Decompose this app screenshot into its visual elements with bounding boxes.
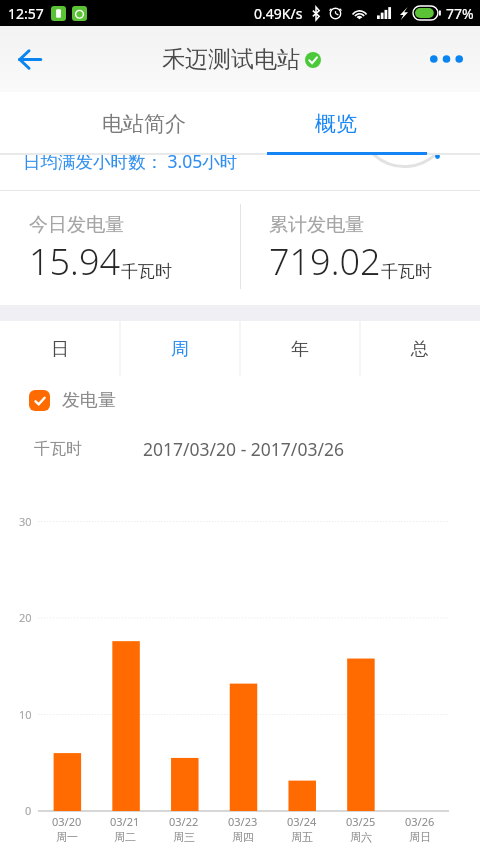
staticText: 2017/03/20 - 2017/03/26 xyxy=(143,437,344,461)
staticText: 周日 xyxy=(409,830,431,844)
staticText: 719.02 xyxy=(269,237,381,286)
staticText: 15.94 xyxy=(29,237,121,286)
staticText: 77% xyxy=(446,4,474,23)
staticText: 03/22 xyxy=(169,814,199,829)
staticText: 03/23 xyxy=(228,814,258,829)
staticText: 03/21 xyxy=(110,814,140,829)
staticText: 周二 xyxy=(114,830,136,844)
staticText: 千瓦时 xyxy=(381,261,432,282)
button[interactable]: 总 xyxy=(360,321,480,378)
staticText: 10 xyxy=(19,707,32,722)
button[interactable]: 电站简介 xyxy=(48,92,240,155)
staticText: 年 xyxy=(291,338,309,361)
button[interactable]: 概览 xyxy=(240,92,432,155)
staticText: 日 xyxy=(51,338,69,361)
staticText: 电站简介 xyxy=(102,111,186,137)
staticText: 千瓦时 xyxy=(121,261,172,282)
staticText: 0 xyxy=(25,803,32,818)
staticText: 周三 xyxy=(173,830,195,844)
staticText: 千瓦时 xyxy=(34,439,82,459)
button[interactable]: 发电量 xyxy=(29,389,116,412)
button[interactable]: More options xyxy=(417,31,475,87)
staticText: 周五 xyxy=(291,830,313,844)
staticText: 03/24 xyxy=(287,814,317,829)
button[interactable]: 周 xyxy=(120,321,240,378)
staticText: 周 xyxy=(171,338,189,361)
staticText: 发电量 xyxy=(62,389,116,412)
button[interactable]: Back xyxy=(0,29,58,89)
staticText: 03/25 xyxy=(346,814,376,829)
staticText: 03/20 xyxy=(52,814,82,829)
button[interactable]: 日 xyxy=(0,321,120,378)
staticText: 概览 xyxy=(315,111,357,137)
staticText: 周六 xyxy=(350,830,372,844)
staticText: 30 xyxy=(19,514,32,529)
staticText: 今日发电量 xyxy=(29,213,124,237)
staticText: 禾迈测试电站 xyxy=(162,45,300,74)
staticText: 12:57 xyxy=(8,4,44,23)
staticText: 日均满发小时数： 3.05小时 xyxy=(23,155,238,173)
staticText: 0.49K/s xyxy=(254,4,303,23)
staticText: 20 xyxy=(19,610,32,625)
button[interactable]: 年 xyxy=(240,321,360,378)
staticText: 周一 xyxy=(56,830,78,844)
staticText: 03/26 xyxy=(405,814,435,829)
staticText: 总 xyxy=(411,338,429,361)
staticText: 周四 xyxy=(232,830,254,844)
staticText: 累计发电量 xyxy=(269,213,364,237)
